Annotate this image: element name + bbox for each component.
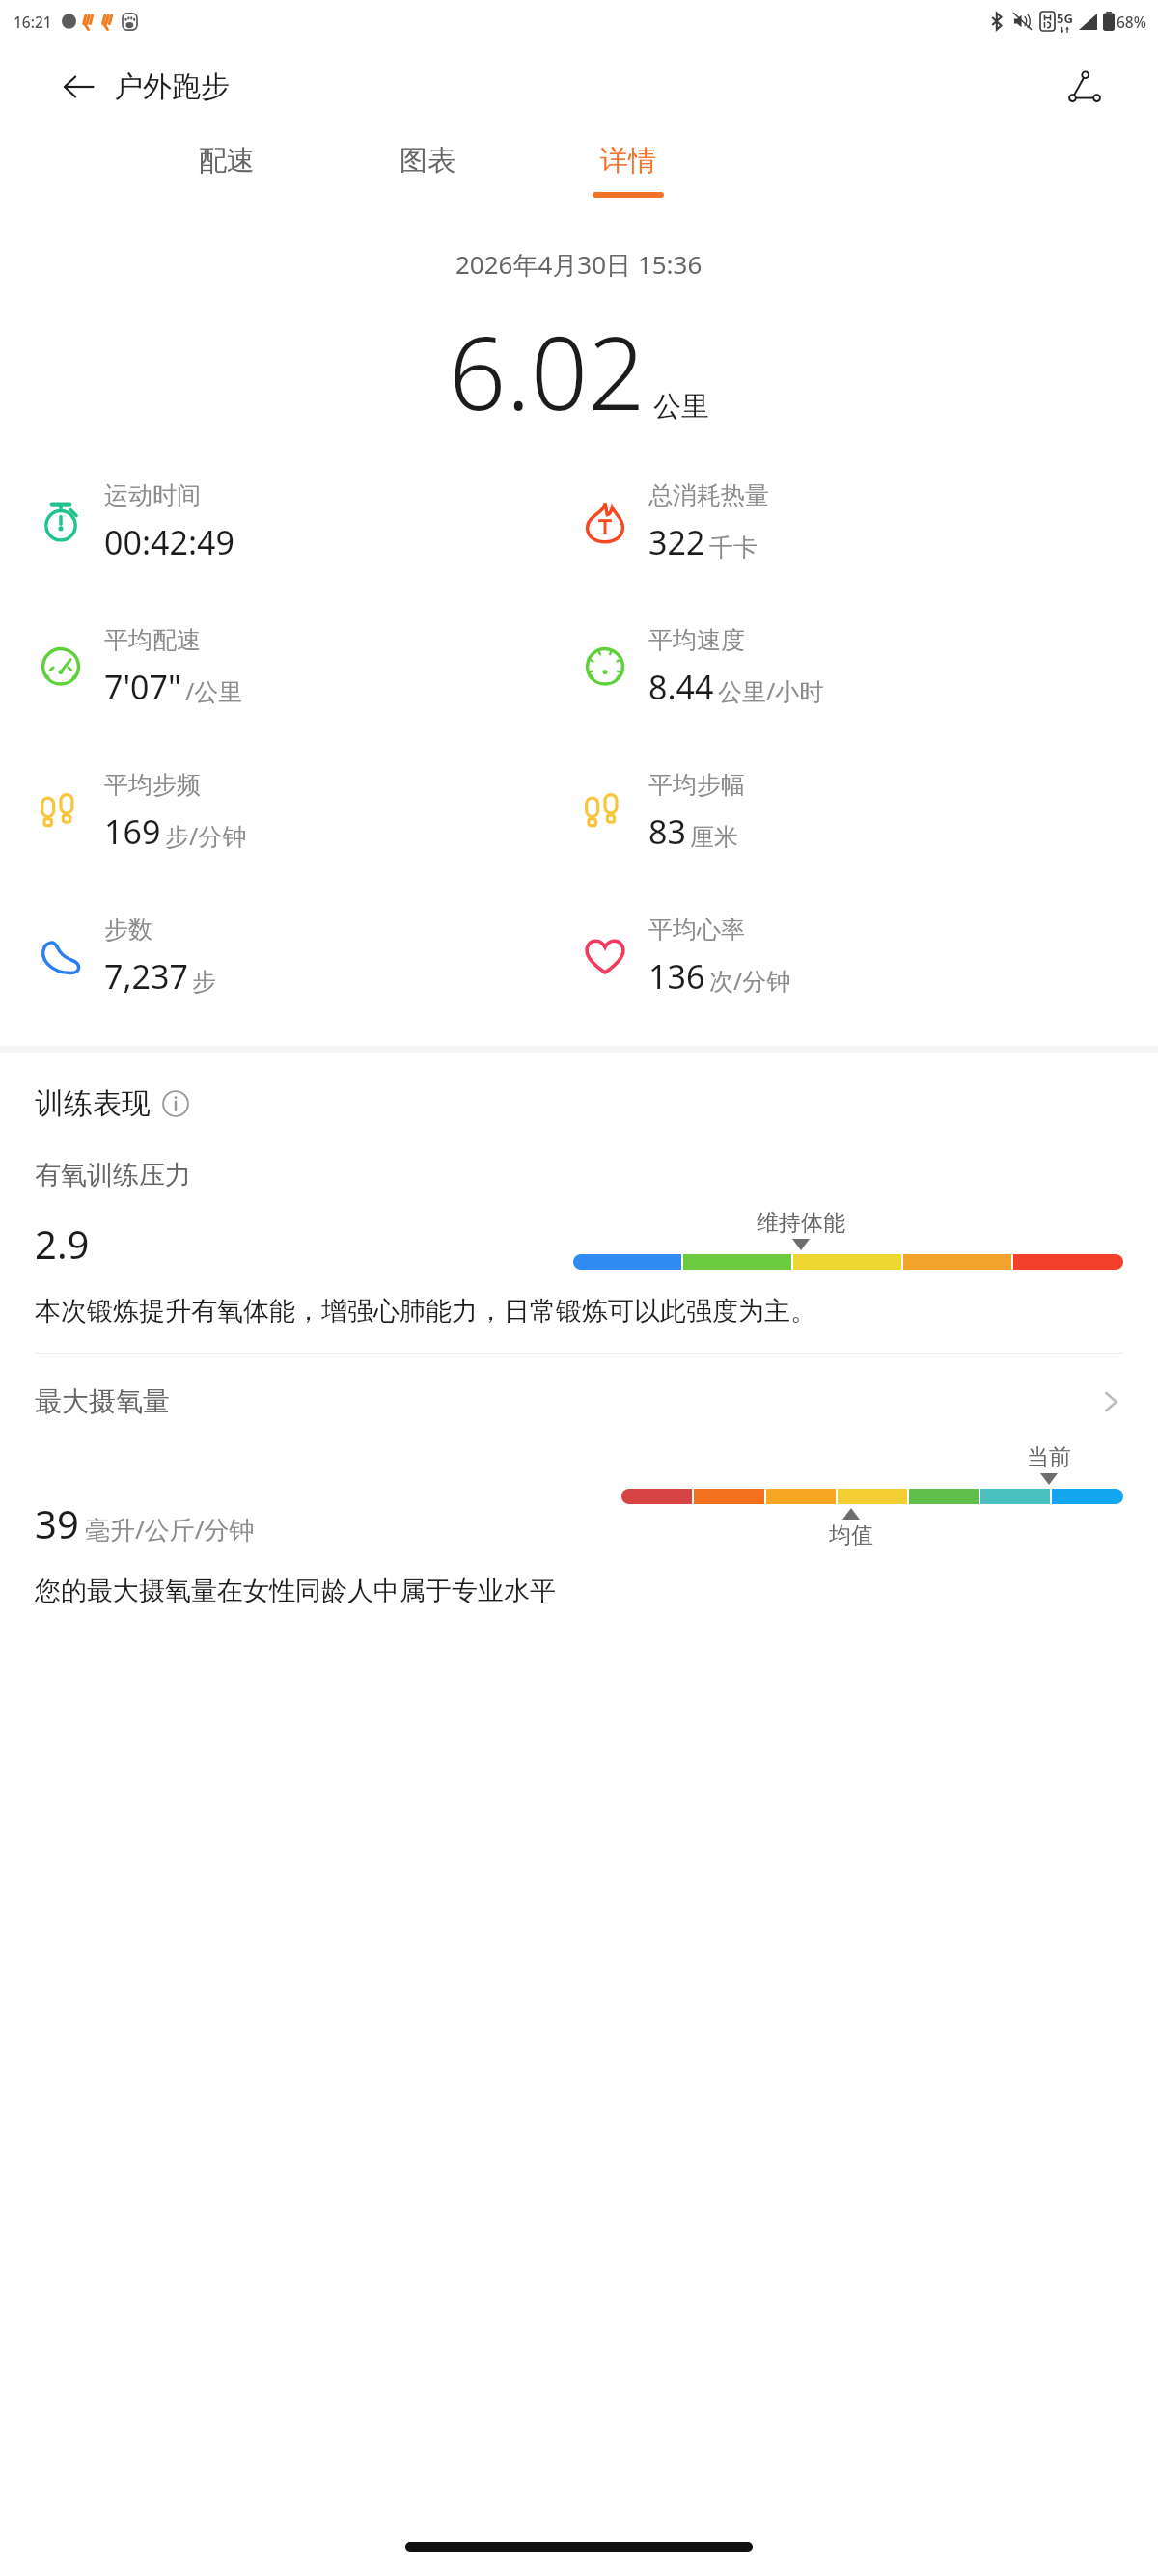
staticText: 步/分钟 — [165, 819, 247, 852]
staticText: 详情 — [600, 143, 656, 178]
button[interactable]: 运动时间 — [35, 450, 579, 594]
staticText: 总消耗热量 — [648, 480, 769, 510]
staticText: 2.9 — [35, 1218, 90, 1270]
staticText: 00:42:49 — [104, 520, 234, 564]
staticText: 运动时间 — [104, 480, 201, 510]
staticText: 7'07" — [104, 665, 181, 709]
staticText: 步 — [192, 967, 216, 997]
staticText: 步数 — [104, 915, 152, 945]
staticText: 68% — [1117, 12, 1146, 32]
staticText: 平均速度 — [648, 625, 745, 655]
staticText: 平均配速 — [104, 625, 201, 655]
staticText: 平均步幅 — [648, 770, 745, 800]
staticText: 平均步频 — [104, 770, 201, 800]
staticText: 83 — [648, 809, 686, 854]
staticText: 169 — [104, 809, 161, 854]
staticText: 厘米 — [690, 822, 738, 852]
button[interactable]: 配速 — [164, 131, 289, 192]
staticText: 本次锻炼提升有氧体能，增强心肺能力，日常锻炼可以此强度为主。 — [35, 1295, 816, 1328]
button[interactable]: 平均配速 — [35, 594, 579, 739]
button[interactable]: Share — [1056, 58, 1114, 116]
staticText: 均值 — [829, 1521, 873, 1549]
staticText: 户外跑步 — [114, 69, 230, 105]
staticText: 39 — [35, 1497, 79, 1549]
staticText: 公里/小时 — [718, 674, 824, 707]
staticText: 8.44 — [648, 665, 714, 709]
staticText: 训练表现 — [35, 1085, 151, 1122]
button[interactable]: 最大摄氧量 — [35, 1384, 1123, 1418]
staticText: 16:21 — [14, 12, 52, 32]
staticText: 您的最大摄氧量在女性同龄人中属于专业水平 — [35, 1575, 556, 1607]
staticText: 平均心率 — [648, 915, 745, 945]
staticText: 322 — [648, 520, 705, 564]
button[interactable]: 总消耗热量 — [579, 450, 1123, 594]
staticText: 有氧训练压力 — [35, 1159, 191, 1192]
staticText: 最大摄氧量 — [35, 1384, 170, 1418]
staticText: 当前 — [1027, 1443, 1071, 1471]
button[interactable]: 平均步频 — [35, 739, 579, 884]
button[interactable]: Back — [54, 62, 104, 112]
staticText: 7,237 — [104, 954, 188, 999]
button[interactable]: 平均速度 — [579, 594, 1123, 739]
staticText: 次/分钟 — [709, 964, 791, 997]
staticText: 维持体能 — [757, 1209, 845, 1237]
staticText: 6.02 — [449, 303, 646, 440]
staticText: 2026年4月30日 15:36 — [455, 247, 703, 282]
staticText: 5G — [1057, 10, 1073, 27]
staticText: 图表 — [400, 143, 455, 178]
button[interactable]: 训练表现 — [35, 1085, 189, 1122]
staticText: 配速 — [199, 143, 255, 178]
staticText: /公里 — [185, 674, 243, 707]
staticText: 毫升/公斤/分钟 — [85, 1512, 255, 1547]
staticText: 136 — [648, 954, 705, 999]
button[interactable]: 平均步幅 — [579, 739, 1123, 884]
button[interactable]: 图表 — [365, 131, 490, 192]
staticText: 公里 — [653, 389, 709, 425]
staticText: 千卡 — [709, 533, 758, 562]
button[interactable]: 平均心率 — [579, 884, 1123, 1028]
button[interactable]: 步数 — [35, 884, 579, 1028]
button[interactable]: 详情 — [565, 131, 691, 198]
